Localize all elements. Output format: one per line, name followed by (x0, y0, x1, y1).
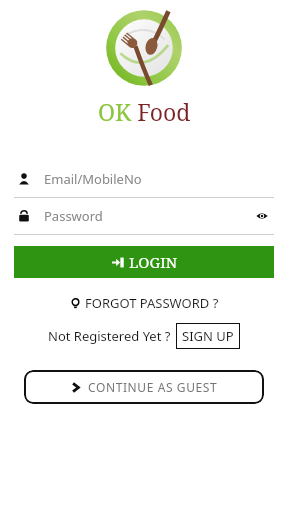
button[interactable]: SIGN UP (176, 323, 240, 349)
other: Password (18, 210, 30, 222)
staticText: Password (44, 207, 254, 225)
button[interactable]: LOGIN (14, 246, 274, 278)
other: User (18, 173, 30, 185)
button[interactable]: User (0, 161, 288, 197)
button[interactable]: CONTINUE AS GUEST (24, 370, 264, 404)
button[interactable]: FORGOT PASSWORD ? (64, 292, 225, 314)
staticText: Not Registered Yet ? (48, 327, 171, 345)
staticText: FORGOT PASSWORD ? (85, 294, 219, 312)
staticText: Email/MobileNo (44, 170, 270, 188)
button[interactable]: Password (0, 198, 288, 234)
button[interactable]: Show password (254, 208, 270, 224)
staticText: OK Food (98, 96, 191, 127)
staticText: CONTINUE AS GUEST (88, 379, 218, 395)
staticText: SIGN UP (182, 327, 234, 345)
staticText: LOGIN (129, 252, 178, 272)
